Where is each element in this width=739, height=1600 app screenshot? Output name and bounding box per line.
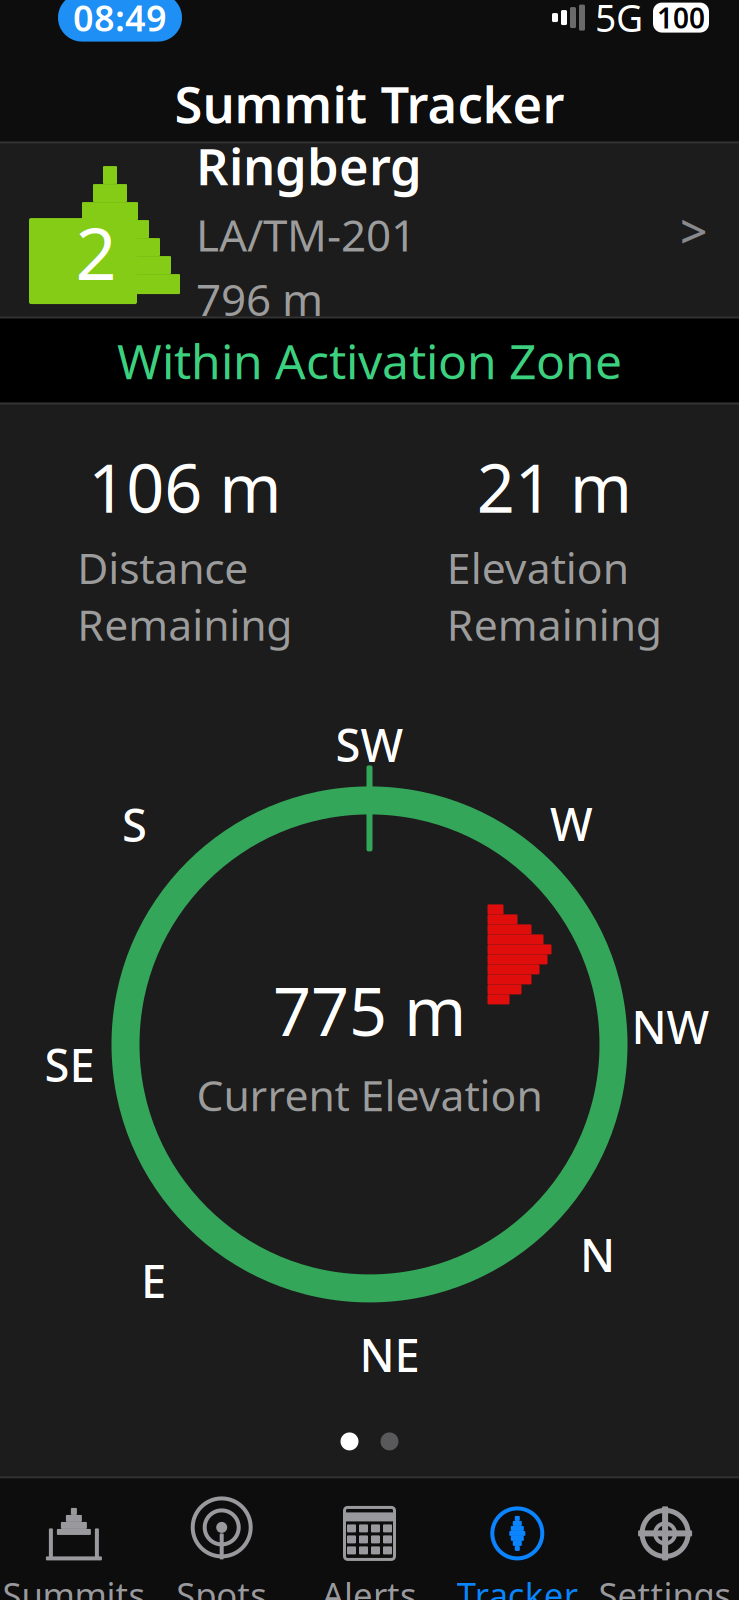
staticText: NW xyxy=(631,996,709,1056)
staticText: 5G xyxy=(595,0,643,42)
staticText: Spots xyxy=(176,1571,267,1600)
button[interactable]: Tracker xyxy=(443,1505,591,1600)
button[interactable]: Settings xyxy=(591,1505,739,1600)
staticText: Within Activation Zone xyxy=(117,329,622,392)
staticText: 100 xyxy=(657,0,705,36)
staticText: S xyxy=(122,794,147,854)
staticText: E xyxy=(141,1250,166,1310)
staticText: 775 m xyxy=(273,966,466,1054)
staticText: Current Elevation xyxy=(196,1066,542,1123)
button[interactable]: 2 xyxy=(0,144,739,317)
button[interactable]: Summits xyxy=(0,1505,148,1600)
staticText: 21 m xyxy=(477,443,632,531)
staticText: 2 xyxy=(75,204,116,300)
button[interactable]: Alerts xyxy=(296,1505,443,1600)
staticText: Summit Tracker xyxy=(174,70,564,137)
staticText: Distance Remaining xyxy=(77,539,292,652)
staticText: Summits xyxy=(2,1571,145,1600)
staticText: Settings xyxy=(599,1571,732,1600)
staticText: 08:49 xyxy=(73,0,167,41)
staticText: Ringberg xyxy=(196,132,422,199)
staticText: 106 m xyxy=(88,443,281,531)
staticText: SW xyxy=(335,714,403,774)
staticText: W xyxy=(550,793,593,853)
staticText: LA/TM-201 xyxy=(196,205,416,264)
staticText: > xyxy=(680,198,707,262)
staticText: N xyxy=(580,1224,615,1284)
staticText: NE xyxy=(359,1324,419,1384)
staticText: Elevation Remaining xyxy=(447,539,662,652)
staticText: Alerts xyxy=(322,1571,417,1600)
staticText: Tracker xyxy=(457,1571,578,1600)
staticText: 796 m xyxy=(196,270,323,328)
staticText: SE xyxy=(44,1034,94,1094)
button[interactable]: Spots xyxy=(148,1505,296,1600)
